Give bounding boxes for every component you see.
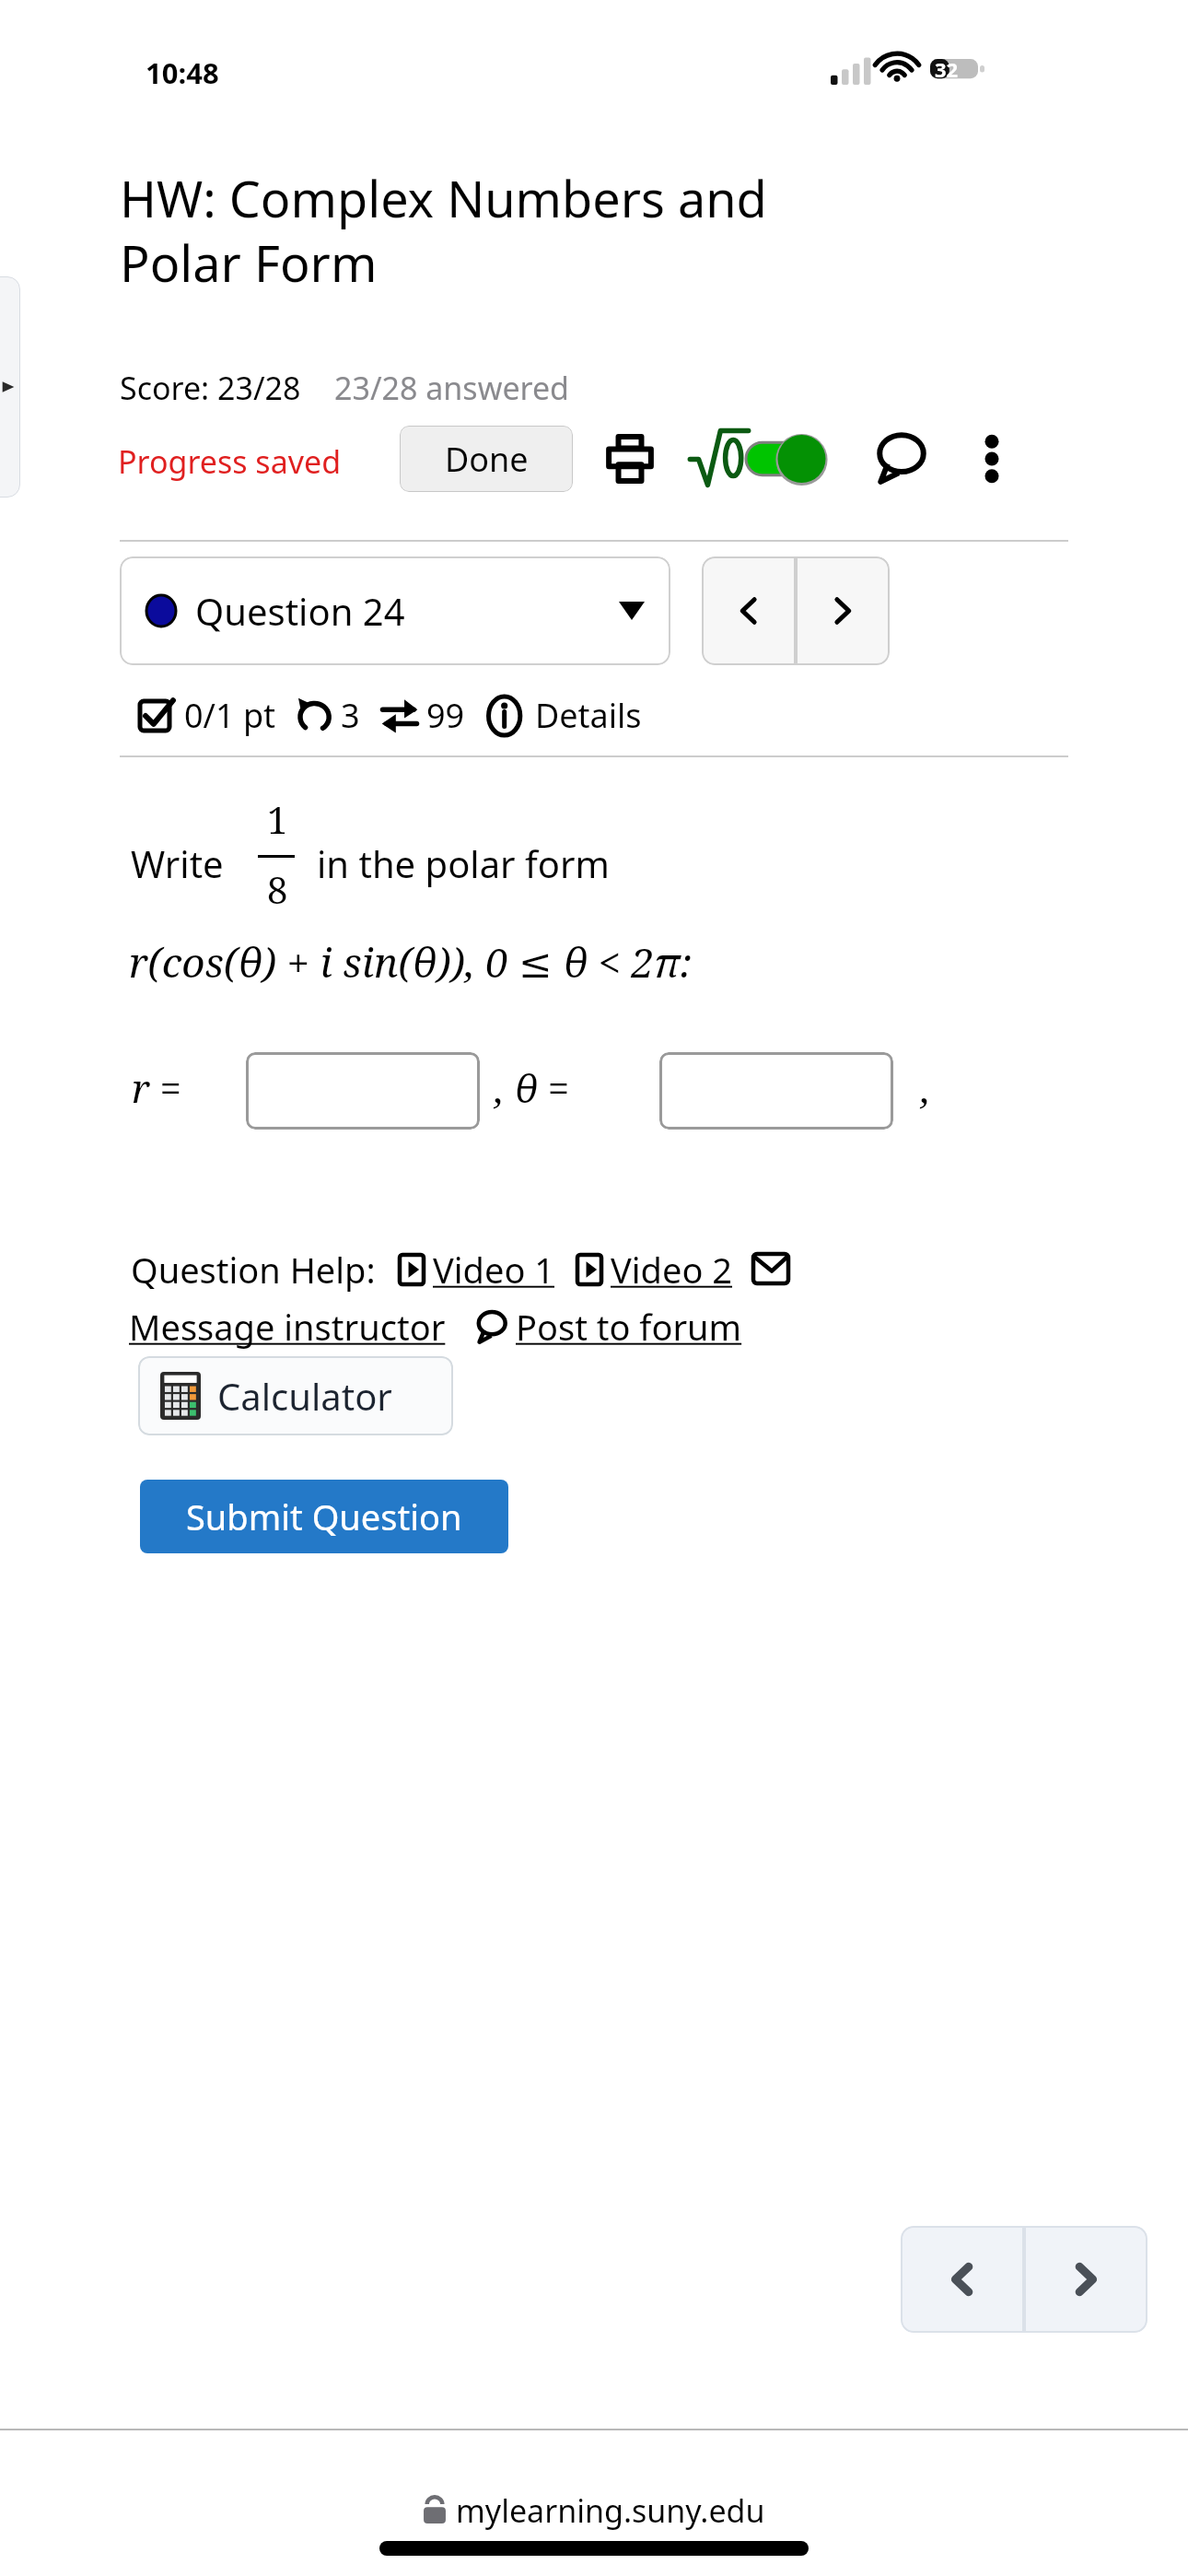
button[interactable]: Message instructor (129, 1303, 455, 1351)
staticText: , (921, 1061, 931, 1114)
staticText: Post to forum (516, 1303, 742, 1351)
staticText: Details (535, 693, 642, 738)
staticText: in the polar form (317, 838, 610, 888)
staticText: Score: 23/28 (120, 367, 301, 409)
button[interactable]: Video 1 (398, 1246, 555, 1294)
staticText: Calculator (217, 1371, 392, 1421)
button[interactable]: theta answer field (659, 1052, 893, 1130)
button[interactable]: Next (1024, 2226, 1147, 2333)
staticText: 23/28 answered (334, 367, 569, 409)
staticText: 1 (267, 794, 288, 844)
button[interactable]: mylearning.suny.edu (456, 2489, 765, 2532)
staticText: Question Help: (131, 1246, 376, 1294)
button[interactable]: Next question (796, 556, 890, 665)
button[interactable]: Video 2 (576, 1246, 733, 1294)
button[interactable]: r answer field (246, 1052, 480, 1130)
staticText: r(cos(θ) + i sin(θ)), 0 ≤ θ < 2π: (129, 934, 693, 989)
staticText: 8 (267, 864, 288, 914)
staticText: Submit Question (186, 1493, 462, 1540)
staticText: , θ = (495, 1061, 570, 1114)
staticText: HW: Complex Numbers and Polar Form (120, 164, 1041, 297)
button[interactable]: Email (751, 1251, 792, 1288)
staticText: Done (445, 437, 529, 482)
button[interactable]: Previous (901, 2226, 1024, 2333)
button[interactable]: Comments (873, 429, 930, 486)
button[interactable]: Submit Question (140, 1480, 508, 1553)
button[interactable]: Calculator (138, 1356, 453, 1435)
staticText: Video 2 (611, 1246, 733, 1294)
button[interactable]: Open panel (0, 276, 20, 498)
staticText: Write (131, 838, 224, 888)
button[interactable]: Done (400, 426, 573, 492)
button[interactable]: Post to forum (475, 1303, 742, 1351)
button[interactable]: Progress saved (118, 440, 342, 483)
button[interactable]: Question 24 (120, 556, 670, 665)
staticText: Video 1 (433, 1246, 555, 1294)
staticText: r = (132, 1061, 182, 1114)
staticText: 32 (935, 55, 959, 83)
button[interactable]: Details (485, 693, 642, 738)
button[interactable]: More options (965, 426, 1019, 492)
staticText: Question 24 (195, 586, 405, 636)
staticText: 3 (341, 693, 360, 738)
staticText: 99 (426, 693, 465, 738)
button[interactable]: Previous question (702, 556, 796, 665)
staticText: 0/1 pt (184, 693, 276, 738)
staticText: 10:48 (146, 53, 219, 92)
button[interactable]: Print (600, 429, 659, 488)
button[interactable]: Toggle math view (746, 435, 834, 483)
